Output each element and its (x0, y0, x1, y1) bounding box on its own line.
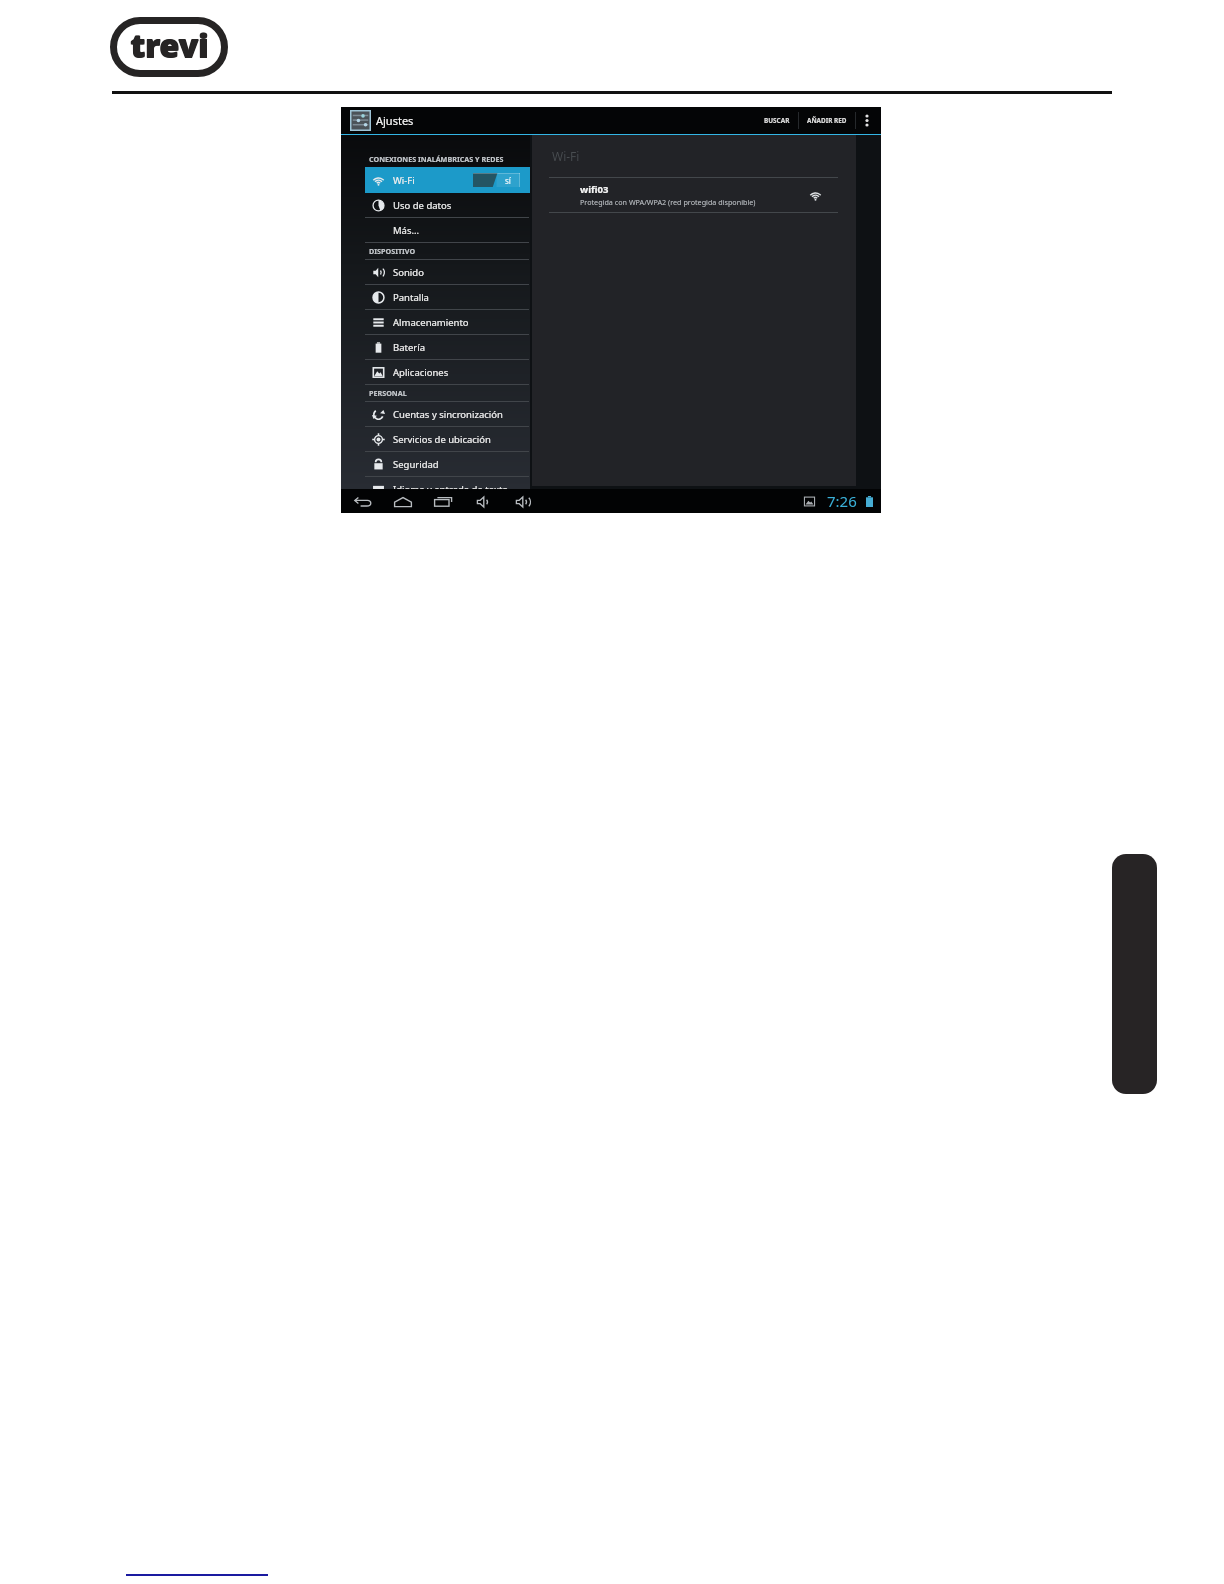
staticText: DISPOSITIVO (369, 246, 416, 256)
button[interactable]: Batería (365, 335, 530, 359)
staticText: Uso de datos (393, 199, 452, 212)
button[interactable]: Captura de pantalla (804, 496, 815, 507)
button[interactable]: Sonido (365, 260, 530, 284)
button[interactable]: Más opciones (856, 107, 878, 134)
button[interactable]: Recientes (431, 490, 454, 513)
staticText: AÑADIR RED (807, 116, 847, 125)
staticText: Protegida con WPA/WPA2 (red protegida di… (580, 197, 756, 207)
staticText: BUSCAR (764, 116, 790, 125)
staticText: wifi03 (580, 183, 609, 196)
button[interactable]: Más... (365, 218, 530, 242)
staticText: Sonido (393, 266, 424, 279)
button[interactable]: Idioma y entrada de texto (365, 477, 530, 489)
button[interactable]: Servicios de ubicación (365, 427, 530, 451)
staticText: Almacenamiento (393, 316, 469, 329)
staticText: Seguridad (393, 458, 439, 471)
staticText: sí (505, 175, 511, 186)
button[interactable]: AÑADIR RED (799, 107, 855, 134)
staticText: Batería (393, 341, 425, 354)
button[interactable]: Aplicaciones (365, 360, 530, 384)
button[interactable]: Ajustes (350, 110, 371, 131)
button[interactable]: Inicio (391, 490, 414, 513)
button[interactable]: Cuentas y sincronización (365, 402, 530, 426)
staticText: trevi (130, 24, 209, 68)
staticText: Ajustes (376, 113, 414, 128)
button[interactable]: BUSCAR (756, 107, 798, 134)
staticText: Servicios de ubicación (393, 433, 491, 446)
button[interactable]: Bajar volumen (471, 490, 494, 513)
button[interactable]: Uso de datos (365, 193, 530, 217)
button[interactable]: Subir volumen (512, 490, 535, 513)
staticText: Wi-Fi (393, 174, 415, 187)
staticText: trevi (131, 24, 210, 68)
staticText: trevi (130, 23, 209, 67)
button[interactable]: sí (473, 173, 520, 187)
button[interactable]: Atrás (351, 490, 374, 513)
button[interactable]: Seguridad (365, 452, 530, 476)
staticText: CONEXIONES INALÁMBRICAS Y REDES (369, 154, 504, 164)
staticText: Pantalla (393, 291, 429, 304)
staticText: trevi (131, 23, 210, 67)
staticText: Aplicaciones (393, 366, 449, 379)
staticText: 7:26 (827, 491, 857, 511)
button[interactable]: Wi-Fi (365, 167, 530, 193)
staticText: Más... (393, 224, 420, 237)
staticText: Cuentas y sincronización (393, 408, 503, 421)
staticText: Wi-Fi (552, 148, 580, 164)
staticText: Idioma y entrada de texto (393, 483, 509, 489)
button[interactable]: Pantalla (365, 285, 530, 309)
button[interactable]: wifi03 (549, 178, 838, 212)
staticText: PERSONAL (369, 388, 407, 398)
button[interactable]: Almacenamiento (365, 310, 530, 334)
